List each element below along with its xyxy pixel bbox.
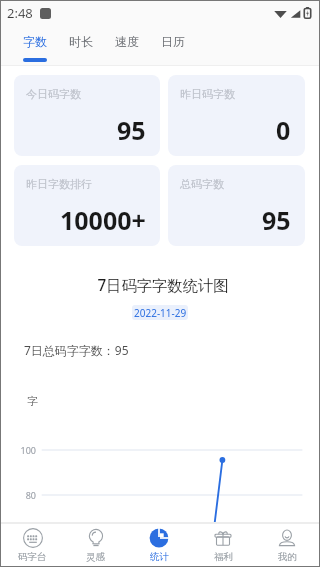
button[interactable]: 总码字数 [168,165,305,246]
staticText: 80 [1,489,36,501]
button[interactable]: 福利 [191,524,255,566]
button[interactable]: 字数 [12,25,58,65]
button[interactable]: 昨日码字数 [168,75,305,156]
staticText: 95 [117,113,146,147]
button[interactable]: 码字台 [1,524,64,566]
button[interactable]: 2022-11-29 [132,305,188,320]
staticText: 字 [27,394,38,408]
staticText: 统计 [150,551,169,563]
button[interactable]: 灵感 [64,524,127,566]
button[interactable]: 昨日字数排行 [14,165,160,246]
staticText: 速度 [115,34,139,49]
staticText: 字数 [23,34,47,49]
staticText: 7日总码字字数：95 [24,342,129,358]
staticText: 7日码字字数统计图 [4,275,320,296]
button[interactable]: 速度 [104,25,150,65]
staticText: 2022-11-29 [134,306,187,320]
staticText: 95 [262,203,291,237]
staticText: 昨日码字数 [180,87,235,101]
button[interactable]: 今日码字数 [14,75,160,156]
staticText: 日历 [161,34,185,49]
staticText: 我的 [278,551,297,563]
staticText: 100 [1,444,36,456]
staticText: 今日码字数 [26,87,81,101]
staticText: 码字台 [18,551,47,563]
staticText: 总码字数 [180,177,224,191]
button[interactable]: 我的 [255,524,319,566]
staticText: 10000+ [60,203,146,237]
staticText: 0 [276,113,291,147]
staticText: 昨日字数排行 [26,177,92,191]
staticText: 福利 [214,551,233,563]
button[interactable]: 时长 [58,25,104,65]
staticText: 灵感 [86,551,105,563]
button[interactable]: 日历 [150,25,196,65]
button[interactable]: 统计 [127,524,191,566]
staticText: 时长 [69,34,93,49]
staticText: 2:48 [7,4,33,22]
